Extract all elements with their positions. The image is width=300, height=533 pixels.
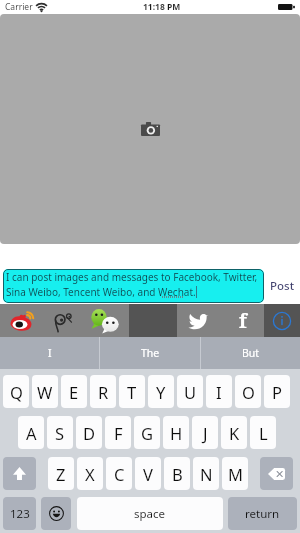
staticText: W: [37, 381, 53, 403]
button[interactable]: Post: [264, 269, 300, 303]
staticText: The: [141, 346, 160, 360]
button[interactable]: Select photo: [0, 14, 300, 244]
staticText: G: [141, 422, 154, 444]
staticText: D: [83, 422, 96, 444]
button[interactable]: Tencent Weibo: [43, 304, 84, 337]
staticText: J: [203, 422, 208, 444]
button[interactable]: But: [201, 337, 300, 369]
button[interactable]: Delete: [260, 457, 293, 490]
button[interactable]: Shift: [3, 457, 36, 490]
button[interactable]: H: [163, 416, 189, 449]
staticText: F: [114, 422, 123, 444]
staticText: Carrier: [5, 1, 33, 13]
staticText: return: [245, 506, 280, 522]
button[interactable]: Return: [228, 497, 297, 530]
staticText: I: [48, 346, 52, 360]
button[interactable]: U: [177, 375, 203, 408]
staticText: A: [26, 422, 37, 444]
button[interactable]: Q: [3, 375, 29, 408]
button[interactable]: L: [250, 416, 276, 449]
button[interactable]: W: [32, 375, 58, 408]
staticText: M: [228, 463, 243, 485]
button[interactable]: O: [235, 375, 261, 408]
button[interactable]: C: [106, 457, 132, 490]
staticText: Post: [270, 278, 295, 294]
button[interactable]: I can post images and messages to Facebo…: [3, 269, 264, 303]
button[interactable]: M: [222, 457, 248, 490]
staticText: O: [242, 381, 255, 403]
staticText: H: [170, 422, 183, 444]
staticText: K: [229, 422, 240, 444]
button[interactable]: Numbers: [3, 497, 36, 530]
button[interactable]: P: [264, 375, 290, 408]
button[interactable]: space: [77, 497, 223, 530]
button[interactable]: I: [0, 337, 99, 369]
staticText: I can post images and messages to Facebo…: [6, 270, 261, 299]
staticText: U: [184, 381, 197, 403]
button[interactable]: The: [100, 337, 200, 369]
staticText: But: [242, 346, 260, 360]
button[interactable]: Info: [264, 304, 300, 337]
staticText: Z: [56, 463, 66, 485]
button[interactable]: T: [119, 375, 145, 408]
button[interactable]: Z: [48, 457, 74, 490]
staticText: S: [55, 422, 65, 444]
button[interactable]: A: [18, 416, 44, 449]
button[interactable]: Twitter: [177, 304, 221, 337]
button[interactable]: S: [47, 416, 73, 449]
button[interactable]: Sina Weibo: [2, 304, 43, 337]
button[interactable]: Y: [148, 375, 174, 408]
button[interactable]: B: [164, 457, 190, 490]
button[interactable]: Emoji: [41, 497, 71, 530]
button[interactable]: F: [105, 416, 131, 449]
staticText: C: [114, 463, 125, 485]
staticText: I: [216, 381, 222, 403]
button[interactable]: N: [193, 457, 219, 490]
button[interactable]: K: [221, 416, 247, 449]
staticText: E: [69, 381, 79, 403]
staticText: space: [134, 506, 166, 522]
button[interactable]: D: [76, 416, 102, 449]
staticText: f: [239, 308, 247, 334]
button[interactable]: R: [90, 375, 116, 408]
button[interactable]: I: [206, 375, 232, 408]
staticText: R: [98, 381, 109, 403]
staticText: Y: [156, 381, 166, 403]
staticText: T: [127, 381, 137, 403]
button[interactable]: V: [135, 457, 161, 490]
button[interactable]: E: [61, 375, 87, 408]
button[interactable]: X: [77, 457, 103, 490]
button[interactable]: J: [192, 416, 218, 449]
button[interactable]: G: [134, 416, 160, 449]
staticText: Q: [10, 381, 23, 403]
staticText: L: [259, 422, 268, 444]
staticText: P: [272, 381, 282, 403]
staticText: V: [143, 463, 153, 485]
staticText: N: [200, 463, 213, 485]
button[interactable]: Facebook: [221, 304, 264, 337]
staticText: X: [85, 463, 95, 485]
staticText: 11:18 PM: [143, 1, 181, 13]
staticText: B: [172, 463, 183, 485]
button[interactable]: WeChat: [84, 304, 125, 337]
staticText: 123: [10, 506, 30, 522]
